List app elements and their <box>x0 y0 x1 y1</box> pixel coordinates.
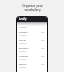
staticText: 31 words <box>19 58 27 60</box>
staticText: Cooking <box>19 55 29 58</box>
staticText: 82% <box>41 31 45 34</box>
button[interactable]: Business <box>17 45 47 53</box>
staticText: Idioms <box>19 63 27 66</box>
button[interactable]: Travel <box>17 37 47 45</box>
staticText: Spanish <box>19 31 28 34</box>
staticText: Organize your <box>22 4 43 8</box>
staticText: 19 words <box>19 66 27 68</box>
staticText: Travel <box>19 39 26 42</box>
button[interactable]: Spanish <box>17 29 47 37</box>
staticText: 42 words <box>19 34 27 36</box>
staticText: 90% <box>41 55 45 58</box>
staticText: Business <box>19 47 29 50</box>
staticText: vocabulary <box>24 8 41 12</box>
staticText: 45% <box>41 47 45 50</box>
staticText: 64 words <box>19 50 27 52</box>
button[interactable]: Cooking <box>17 53 47 61</box>
staticText: MY DECKS <box>19 26 28 28</box>
staticText: 64% <box>41 39 45 42</box>
staticText: 33% <box>41 63 45 66</box>
staticText: Lexify <box>19 17 27 21</box>
button[interactable]: Idioms <box>17 61 47 69</box>
staticText: 28 words <box>19 42 27 44</box>
